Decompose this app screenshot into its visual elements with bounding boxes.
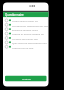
staticText: Ut enim ad minim ven xyxy=(12,37,38,40)
button[interactable]: Eiusmod tempor incid xyxy=(3,27,48,31)
button[interactable]: Laboris nisi ut aliq xyxy=(3,45,48,49)
staticText: Laboris nisi ut aliq xyxy=(12,46,34,49)
button[interactable]: Quis nostrud exercitation ulla xyxy=(3,40,48,44)
button[interactable]: Ut enim ad minim ven xyxy=(3,36,48,40)
staticText: Eiusmod tempor incid xyxy=(12,28,38,31)
staticText: Consectetur adipiscing elit sed xyxy=(12,24,48,27)
staticText: Quis nostrud exercitation ulla xyxy=(12,41,47,44)
button[interactable]: SUBMIT xyxy=(5,76,47,82)
staticText: Questionnaire xyxy=(5,13,24,17)
staticText: SUBMIT xyxy=(22,77,31,80)
button[interactable]: Lorem ipsum dolor sit xyxy=(3,18,48,22)
button[interactable]: Consectetur adipiscing elit sed xyxy=(3,23,48,27)
button[interactable]: Labore et dolore magna ali xyxy=(3,31,48,35)
staticText: Lorem ipsum dolor sit xyxy=(12,19,38,22)
staticText: Labore et dolore magna ali xyxy=(12,32,44,35)
